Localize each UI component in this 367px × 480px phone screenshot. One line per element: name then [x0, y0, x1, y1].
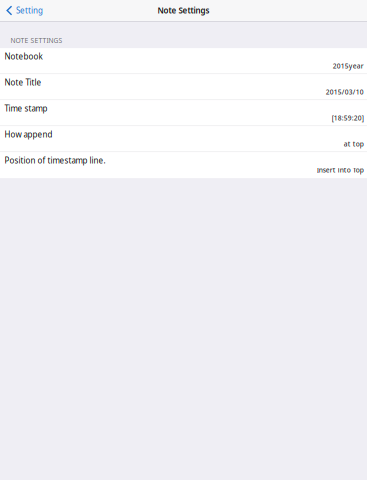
button[interactable]: Note Title [0, 74, 367, 100]
staticText: 2015year [333, 62, 364, 70]
staticText: Note Title [4, 77, 41, 88]
staticText: Note Settings [157, 5, 209, 16]
staticText: [18:59:20] [332, 114, 364, 122]
staticText: How append [4, 129, 52, 140]
staticText: at top [344, 140, 364, 148]
button[interactable]: Time stamp [0, 100, 367, 126]
button[interactable]: Position of timestamp line. [0, 152, 367, 178]
staticText: Position of timestamp line. [4, 155, 105, 166]
staticText: Time stamp [4, 103, 47, 114]
button[interactable]: Notebook [0, 48, 367, 74]
staticText: Insert into Top [317, 166, 364, 174]
button[interactable]: Setting [0, 0, 49, 21]
staticText: Notebook [4, 51, 42, 62]
staticText: Setting [16, 5, 43, 16]
staticText: NOTE SETTINGS [10, 36, 62, 45]
staticText: 2015/03/10 [326, 88, 364, 96]
button[interactable]: How append [0, 126, 367, 152]
